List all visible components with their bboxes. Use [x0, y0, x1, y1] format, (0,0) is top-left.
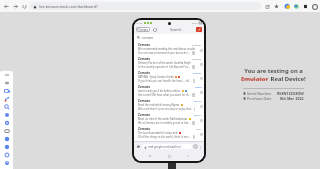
staticText: Who said that it's just one way to enjoy… [138, 107, 193, 111]
button[interactable]: Star [199, 76, 203, 80]
staticText: Zomato [138, 43, 151, 47]
staticText: Inbox [193, 51, 194, 55]
button[interactable]: Home [166, 153, 172, 159]
staticText: Real Device! [269, 75, 306, 83]
staticText: live.browserstack.com/dashboard?try_live… [39, 4, 261, 9]
button[interactable]: Extension B [292, 2, 301, 11]
staticText: In this weekly episode of Life Beyond Fo… [138, 65, 191, 69]
button[interactable]: Zomato [134, 125, 204, 139]
staticText: You can now recommend your favourite r..… [138, 51, 191, 55]
button[interactable]: Back [185, 153, 191, 159]
staticText: Get sorted! We have what you want for th… [138, 93, 191, 97]
button[interactable]: Star [199, 48, 203, 52]
staticText: We at Zomato are incredibly proud to hav… [138, 121, 191, 125]
staticText: Zomato [138, 71, 151, 75]
button[interactable]: Tabs [193, 144, 198, 149]
staticText: 6:48 pm [192, 43, 202, 46]
staticText: R58N13ZQ8QW [277, 91, 304, 95]
staticText: Of all the things in the world, there is… [138, 135, 192, 139]
staticText: mail.google.com/mail/mu/... [148, 145, 183, 149]
button[interactable]: Compose [196, 27, 202, 32]
button[interactable]: Share [263, 2, 272, 11]
staticText: ⋮ [153, 21, 156, 24]
button[interactable]: mail.google.com/mail/mu/... [142, 144, 192, 149]
button[interactable]: Menu [198, 145, 202, 149]
button[interactable]: Reload [20, 2, 29, 11]
button[interactable]: Extension A [283, 2, 292, 11]
button[interactable]: live.browserstack.com/dashboard?try_live… [30, 2, 261, 10]
button[interactable]: Primary [136, 27, 150, 32]
staticText: Mar 21 [194, 113, 202, 116]
button[interactable]: Pause [1, 79, 13, 87]
staticText: zomato [142, 36, 154, 40]
staticText: Sunday [193, 71, 202, 74]
button[interactable]: Zomato [134, 69, 204, 83]
button[interactable]: Profile [310, 2, 319, 11]
button[interactable]: Home [136, 144, 141, 149]
button[interactable]: Bookmark [272, 2, 281, 11]
staticText: 8th Mar, 2022 [280, 96, 304, 100]
staticText: Serial Number [247, 91, 272, 95]
button[interactable]: Zomato [134, 83, 204, 97]
staticText: Purchase Date [247, 96, 272, 100]
staticText: Inbox [193, 121, 194, 125]
button[interactable]: Screenshot [1, 127, 13, 135]
button[interactable]: Menu [1, 71, 13, 79]
button[interactable]: Bug [1, 111, 13, 119]
staticText: Read the mail while having Rajma [138, 103, 180, 107]
button[interactable]: Account [1, 159, 13, 167]
staticText: have to ask you 4 bit before others [138, 89, 181, 93]
staticText: Zomato [138, 85, 151, 89]
staticText: Search [170, 27, 182, 32]
button[interactable]: Refresh [152, 27, 157, 32]
staticText: Delivery Partner of the week: Sunitha Si… [138, 61, 191, 65]
staticText: Primary [137, 28, 149, 32]
staticText: Zomato [138, 57, 151, 61]
staticText: Inbox [193, 93, 194, 97]
staticText: 17:35 [136, 21, 143, 24]
button[interactable]: Device [1, 87, 13, 95]
button[interactable]: Zomato [134, 55, 204, 69]
button[interactable]: Star [199, 118, 203, 122]
button[interactable]: Forward [11, 2, 20, 11]
button[interactable]: Network [1, 95, 13, 103]
button[interactable]: Extensions [301, 2, 310, 11]
staticText: Zomato [138, 113, 151, 117]
staticText: Friday [195, 85, 202, 88]
staticText: 46 % [192, 21, 198, 24]
button[interactable]: Zomato [134, 97, 204, 111]
staticText: The Lunch wonderful recipe and [138, 131, 178, 135]
button[interactable]: Zomato [134, 111, 204, 125]
staticText: Monday [192, 57, 202, 60]
staticText: We recommend reading this mail about res… [138, 47, 195, 51]
staticText: You are testing on a [244, 67, 303, 75]
button[interactable]: Camera [1, 119, 13, 127]
button[interactable]: Help [1, 151, 13, 159]
button[interactable]: Search [1, 103, 13, 111]
staticText: Emulator [241, 75, 269, 83]
button[interactable]: Zomato [134, 41, 204, 55]
staticText: Inbox [193, 65, 194, 69]
button[interactable]: Recents [147, 153, 153, 159]
button[interactable]: Star [199, 62, 203, 66]
button[interactable]: Star [199, 104, 203, 108]
button[interactable]: Star [199, 132, 203, 136]
button[interactable]: Star [199, 90, 203, 94]
staticText: Mar 27 [194, 99, 202, 102]
staticText: Meet us: ride of the week: Rathinakumar [138, 117, 188, 121]
button[interactable]: Settings [1, 135, 13, 143]
staticText: If you think you can handle the heat — t… [138, 79, 192, 83]
staticText: Zomato [138, 127, 151, 131]
staticText: RATEMA : Spicy Combo Inside [138, 75, 174, 79]
button[interactable]: Info [1, 143, 13, 151]
button[interactable]: Back [2, 2, 11, 11]
staticText: Zomato [138, 99, 151, 103]
staticText: Oct 7 [196, 127, 202, 130]
